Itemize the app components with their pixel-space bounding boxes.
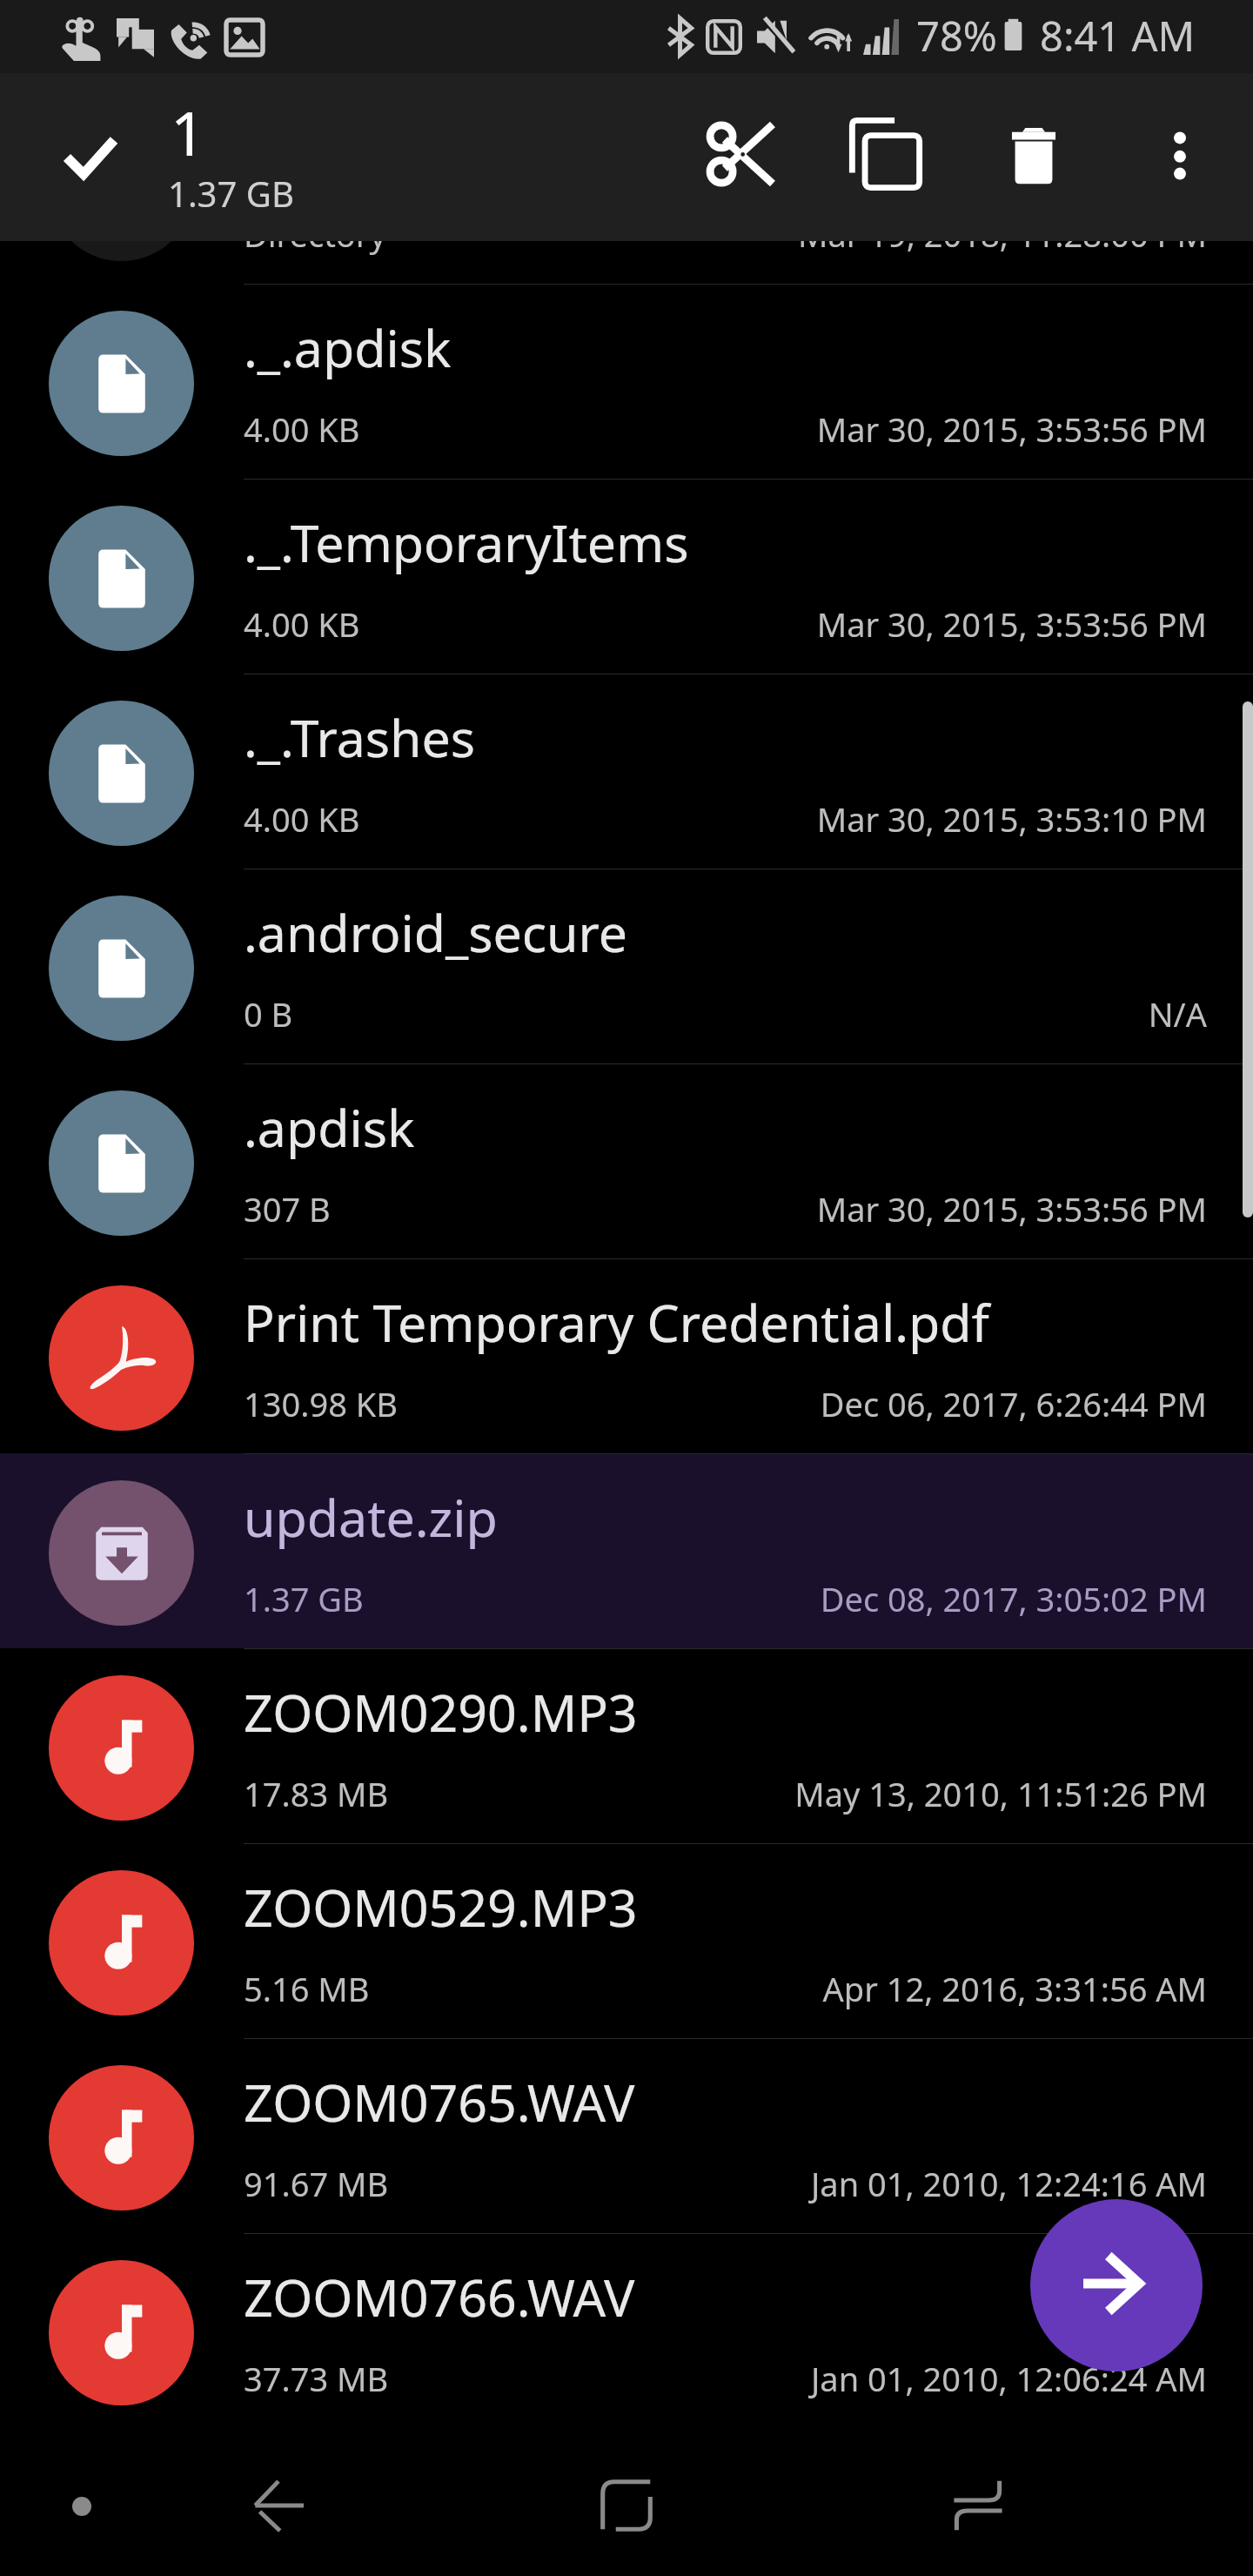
staticText: 1.37 GB [244, 1576, 364, 1621]
staticText: Mar 30, 2015, 3:53:56 PM [0, 406, 1207, 452]
staticText: update.zip [244, 1482, 498, 1552]
staticText: Apr 12, 2016, 3:31:56 AM [0, 1966, 1207, 2011]
staticText: Directory [244, 241, 386, 257]
staticText: 130.98 KB [244, 1381, 398, 1426]
staticText: Mar 30, 2015, 3:53:56 PM [0, 601, 1207, 647]
staticText: Print Temporary Credential.pdf [244, 1287, 989, 1357]
staticText: 4.00 KB [244, 796, 360, 842]
staticText: 307 B [244, 1186, 331, 1231]
staticText: Dec 06, 2017, 6:26:44 PM [0, 1381, 1207, 1426]
button[interactable]: ._.TemporaryItems [0, 479, 1253, 674]
staticText: Jan 01, 2010, 12:06:24 AM [0, 2356, 1207, 2401]
button[interactable]: ZOOM0765.WAV [0, 2038, 1253, 2233]
staticText: 78% [916, 8, 997, 64]
staticText: 8:41 AM [1040, 8, 1196, 64]
staticText: 0 B [244, 991, 293, 1036]
button[interactable]: More options [1122, 98, 1237, 213]
staticText: 4.00 KB [244, 601, 360, 647]
button[interactable]: Back [204, 2432, 352, 2576]
button[interactable]: Copy [828, 97, 943, 211]
staticText: 1.37 GB [168, 170, 294, 217]
button[interactable]: Recents [904, 2432, 1052, 2576]
button[interactable]: ZOOM0529.MP3 [0, 1843, 1253, 2038]
button[interactable]: update.zip [0, 1453, 1253, 1648]
button[interactable]: ZOOM0290.MP3 [0, 1648, 1253, 1843]
button[interactable]: Delete [976, 98, 1091, 213]
staticText: Dec 08, 2017, 3:05:02 PM [0, 1576, 1207, 1621]
staticText: 17.83 MB [244, 1771, 389, 1816]
staticText: ZOOM0529.MP3 [244, 1872, 638, 1942]
staticText: ._.TemporaryItems [244, 507, 689, 577]
button[interactable]: Done [31, 98, 146, 213]
button[interactable]: ZOOM0766.WAV [0, 2233, 1253, 2428]
staticText: ._.Trashes [244, 702, 476, 772]
staticText: Mar 30, 2015, 3:53:56 PM [0, 1186, 1207, 1231]
button[interactable]: Print Temporary Credential.pdf [0, 1258, 1253, 1453]
staticText: May 13, 2010, 11:51:26 PM [0, 1771, 1207, 1816]
staticText: 91.67 MB [244, 2161, 389, 2206]
button[interactable]: DCIM [0, 241, 1253, 284]
button[interactable]: .apdisk [0, 1063, 1253, 1258]
staticText: ZOOM0290.MP3 [244, 1677, 638, 1747]
staticText: .apdisk [244, 1092, 415, 1162]
button[interactable]: Home [553, 2432, 700, 2576]
staticText: ZOOM0766.WAV [244, 2262, 635, 2331]
staticText: 5.16 MB [244, 1966, 370, 2011]
button[interactable]: ._.Trashes [0, 674, 1253, 869]
staticText: ._.apdisk [244, 312, 452, 382]
button[interactable]: ._.apdisk [0, 284, 1253, 479]
staticText: ZOOM0765.WAV [244, 2067, 635, 2137]
staticText: .android_secure [244, 897, 628, 967]
staticText: N/A [0, 991, 1207, 1036]
button[interactable]: Cut [684, 97, 799, 211]
staticText: Mar 19, 2018, 11:28:00 PM [0, 241, 1207, 257]
staticText: Mar 30, 2015, 3:53:10 PM [0, 796, 1207, 842]
staticText: 4.00 KB [244, 406, 360, 452]
staticText: Jan 01, 2010, 12:24:16 AM [0, 2161, 1207, 2206]
button[interactable]: .android_secure [0, 869, 1253, 1063]
button[interactable]: Next [1030, 2199, 1203, 2371]
staticText: 37.73 MB [244, 2356, 389, 2401]
staticText: 1 [171, 91, 206, 173]
